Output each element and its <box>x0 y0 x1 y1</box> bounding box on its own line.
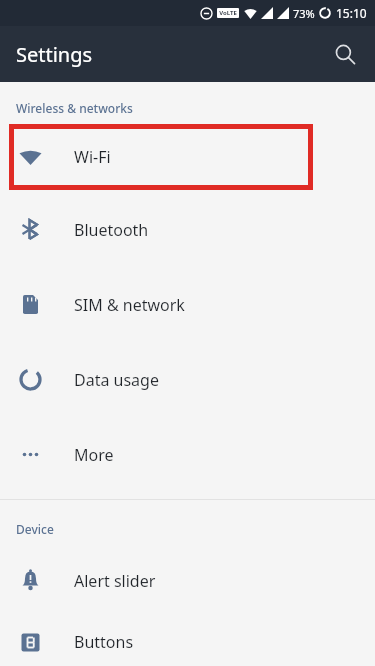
staticText: VoLTE <box>219 9 237 17</box>
button[interactable]: Alert slider <box>0 543 375 618</box>
button[interactable]: Bluetooth <box>0 192 375 267</box>
button[interactable]: More <box>0 417 375 492</box>
staticText: 15:10 <box>336 5 367 21</box>
staticText: Data usage <box>74 369 159 391</box>
button[interactable]: Buttons <box>0 618 375 666</box>
staticText: Bluetooth <box>74 219 149 241</box>
staticText: More <box>74 444 114 466</box>
button[interactable]: SIM & network <box>0 267 375 342</box>
staticText: Alert slider <box>74 570 156 592</box>
staticText: 73% <box>293 6 315 21</box>
button[interactable]: Search <box>325 34 365 74</box>
button[interactable]: Data usage <box>0 342 375 417</box>
staticText: Wireless & networks <box>16 100 133 116</box>
button[interactable]: Wi-Fi <box>0 122 375 192</box>
staticText: Buttons <box>74 631 134 653</box>
staticText: Device <box>16 521 54 537</box>
staticText: Wi-Fi <box>74 146 111 168</box>
staticText: Settings <box>16 41 93 68</box>
staticText: SIM & network <box>74 294 185 316</box>
